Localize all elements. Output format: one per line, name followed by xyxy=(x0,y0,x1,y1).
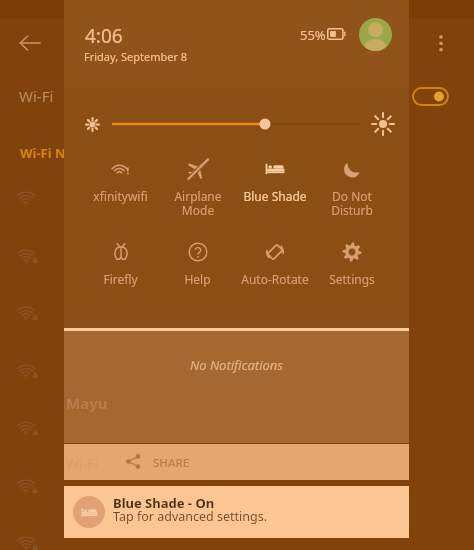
button[interactable]: Settings xyxy=(313,235,390,315)
button[interactable]: Wi-Fi network xyxy=(16,305,40,322)
button[interactable]: Wi-Fi network xyxy=(16,363,40,380)
staticText: Do Not Disturb xyxy=(331,188,373,219)
staticText: xfinitywifi xyxy=(93,188,148,204)
button[interactable]: Help xyxy=(159,235,236,315)
staticText: Wi-Fi Networks xyxy=(20,144,119,162)
staticText: Airplane Mode xyxy=(174,188,222,219)
button[interactable]: Wi-Fi network xyxy=(16,535,40,550)
button[interactable]: Wi-Fi network xyxy=(16,190,40,207)
button[interactable]: Wi-Fi network xyxy=(16,248,40,265)
staticText: Wi-Fi xyxy=(19,86,54,106)
staticText: Tap for advanced settings. xyxy=(113,508,267,525)
staticText: Blue Shade xyxy=(243,188,307,204)
staticText: Firefly xyxy=(103,271,138,287)
staticText: No Notifications xyxy=(190,356,283,374)
button[interactable]: Wi-Fi toggle xyxy=(412,87,449,106)
staticText: Mayu xyxy=(66,393,108,413)
button[interactable]: Wi-Fi network xyxy=(16,420,40,437)
staticText: Auto-Rotate xyxy=(241,271,309,287)
button[interactable]: Back xyxy=(18,31,42,55)
button[interactable]: Firefly xyxy=(82,235,159,315)
staticText: Help xyxy=(184,271,211,287)
staticText: 55% xyxy=(300,26,326,44)
button[interactable]: Wi-Fi xyxy=(64,444,409,480)
button[interactable]: Blue Shade - On xyxy=(64,486,409,538)
button[interactable]: Do Not Disturb xyxy=(313,152,390,232)
button[interactable]: Airplane Mode xyxy=(159,152,236,232)
button[interactable]: xfinitywifi xyxy=(82,152,159,232)
button[interactable]: Wi-Fi network xyxy=(16,478,40,495)
button[interactable]: Blue Shade xyxy=(236,152,313,232)
staticText: SHARE xyxy=(153,455,190,471)
staticText: Blue Shade - On xyxy=(113,494,215,512)
staticText: Friday, September 8 xyxy=(84,49,188,64)
staticText: 4:06 xyxy=(85,23,123,49)
button[interactable]: More options xyxy=(433,34,449,50)
button[interactable]: Brightness xyxy=(112,116,360,132)
button[interactable]: Profile xyxy=(359,18,392,51)
staticText: Settings xyxy=(329,271,375,287)
button[interactable]: Auto-Rotate xyxy=(236,235,313,315)
